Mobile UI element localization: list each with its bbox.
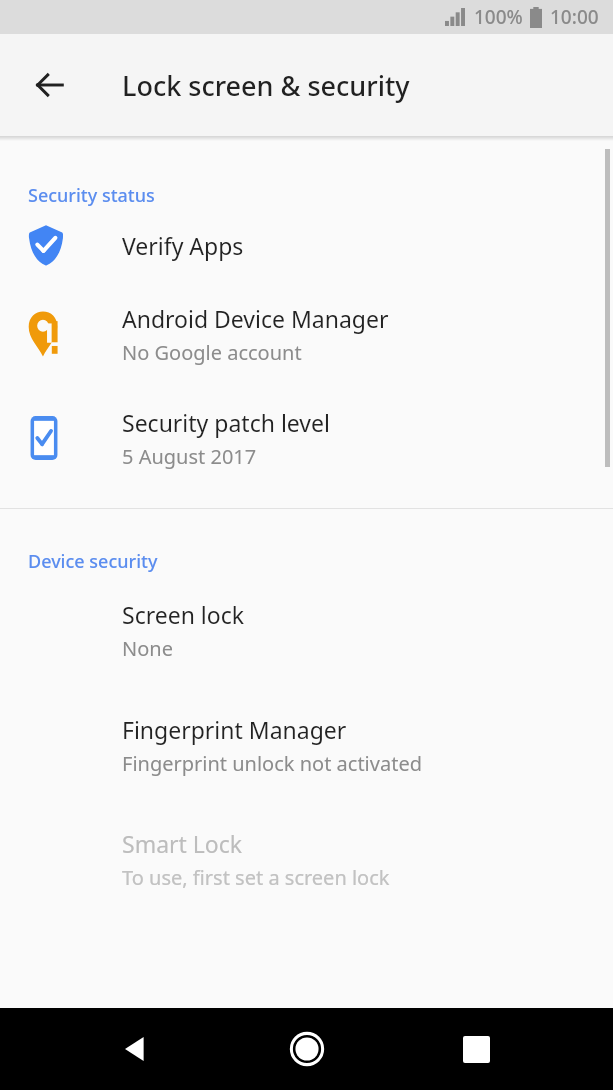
button[interactable]: Recent apps [442,1015,510,1083]
staticText: 100% [474,4,523,30]
staticText: Device security [28,549,158,574]
staticText: Lock screen & security [122,67,410,104]
staticText: To use, first set a screen lock [122,864,390,891]
staticText: Fingerprint unlock not activated [122,750,422,777]
button[interactable]: Fingerprint Manager [0,686,613,804]
button[interactable]: Smart Lock [0,804,613,914]
staticText: Fingerprint Manager [122,714,347,745]
button[interactable]: Back [103,1015,171,1083]
button[interactable]: Security patch level [0,386,613,490]
staticText: None [122,635,173,662]
staticText: 5 August 2017 [122,443,257,470]
staticText: No Google account [122,339,302,366]
staticText: Screen lock [122,599,245,630]
button[interactable]: Screen lock [0,574,613,686]
button[interactable]: Back [22,57,78,113]
staticText: Security status [28,183,155,208]
staticText: 10:00 [550,4,599,30]
staticText: Smart Lock [122,828,243,859]
staticText: Verify Apps [122,230,244,261]
button[interactable]: Verify Apps [0,208,613,282]
button[interactable]: Home [273,1015,341,1083]
staticText: Android Device Manager [122,303,389,334]
staticText: Security patch level [122,407,330,438]
button[interactable]: Android Device Manager [0,282,613,386]
